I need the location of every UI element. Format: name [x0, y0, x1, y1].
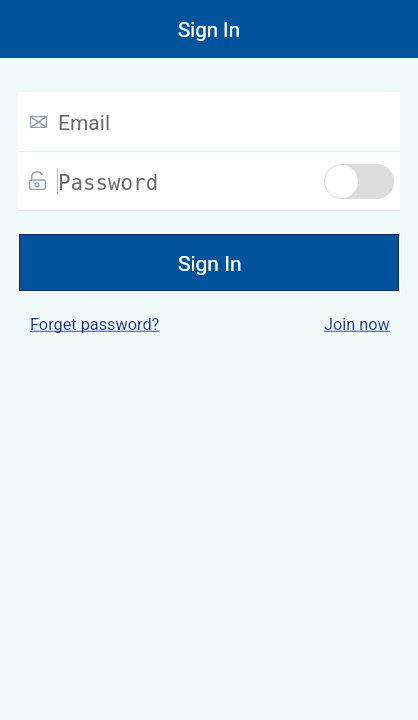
staticText: Email: [58, 111, 110, 136]
button[interactable]: Show password: [324, 164, 394, 199]
staticText: Sign In: [178, 252, 242, 277]
button[interactable]: Password: [18, 152, 400, 210]
staticText: Sign In: [178, 18, 240, 42]
button[interactable]: Email: [18, 92, 400, 151]
staticText: Password: [58, 171, 159, 195]
button[interactable]: Forget password?: [30, 315, 160, 334]
button[interactable]: Join now: [324, 315, 390, 334]
button[interactable]: Sign In: [20, 235, 398, 290]
